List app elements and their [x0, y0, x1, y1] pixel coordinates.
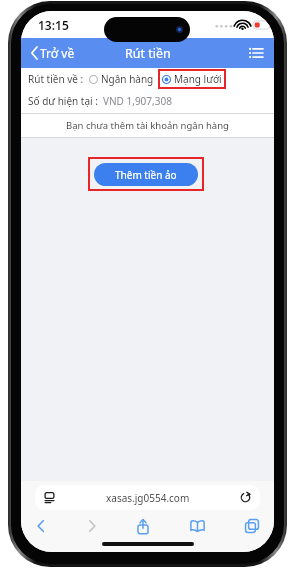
- button[interactable]: Menu: [246, 44, 266, 62]
- staticText: Số dư hiện tại :: [28, 94, 98, 108]
- staticText: Ngân hàng: [101, 72, 154, 86]
- staticText: Bạn chưa thêm tài khoản ngân hàng: [66, 119, 229, 132]
- button[interactable]: Share: [134, 516, 152, 537]
- button[interactable]: Back: [33, 515, 49, 537]
- button[interactable]: Mạng lưới: [158, 69, 226, 89]
- button[interactable]: Thêm tiền ảo: [94, 163, 198, 186]
- staticText: Thêm tiền ảo: [115, 168, 177, 182]
- staticText: 13:15: [38, 17, 69, 33]
- button[interactable]: Page settings: [35, 485, 260, 510]
- staticText: Rút tiền về :: [28, 72, 84, 86]
- other: Reload: [240, 492, 251, 503]
- staticText: xasas.jg0554.com: [106, 491, 190, 505]
- button[interactable]: Ngân hàng: [89, 72, 154, 86]
- button[interactable]: Bookmarks: [187, 517, 208, 535]
- staticText: VND 1,907,308: [103, 94, 172, 108]
- other: Page settings: [44, 492, 55, 503]
- staticText: Trở về: [40, 45, 75, 61]
- staticText: Mạng lưới: [174, 72, 222, 86]
- button[interactable]: Trở về: [27, 41, 79, 65]
- staticText: Rút tiền: [125, 45, 171, 62]
- button[interactable]: Forward: [84, 515, 100, 537]
- button[interactable]: Tabs: [242, 516, 262, 536]
